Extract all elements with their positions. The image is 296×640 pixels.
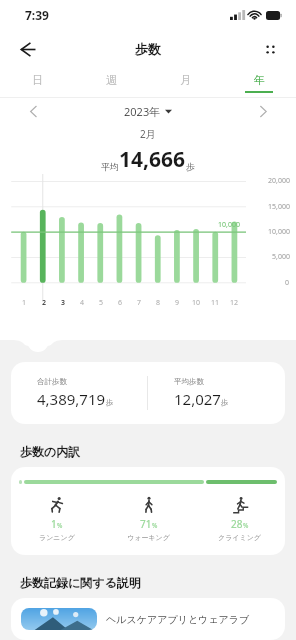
- button[interactable]: 1: [11, 496, 103, 542]
- staticText: 1: [22, 298, 27, 308]
- button[interactable]: 週: [74, 68, 148, 98]
- staticText: 5: [99, 298, 104, 308]
- staticText: 8: [156, 298, 161, 308]
- staticText: 歩: [186, 161, 195, 172]
- button[interactable]: ヘルスケアアプリとウェアラブ: [11, 598, 285, 640]
- button[interactable]: 2023年: [124, 104, 172, 119]
- staticText: 歩: [221, 398, 229, 407]
- staticText: 5,000: [272, 252, 290, 262]
- staticText: 年: [254, 73, 265, 87]
- staticText: 平均歩数: [174, 377, 204, 386]
- staticText: ウォーキング: [127, 533, 170, 542]
- staticText: 平均: [101, 161, 119, 172]
- staticText: %: [152, 521, 158, 530]
- button[interactable]: More options: [252, 31, 288, 67]
- staticText: 2023年: [124, 104, 161, 119]
- staticText: 3: [61, 298, 66, 308]
- staticText: 歩数: [135, 41, 161, 57]
- staticText: 15,000: [268, 202, 290, 212]
- button[interactable]: 1: [11, 467, 285, 555]
- button[interactable]: Back: [8, 30, 46, 68]
- staticText: 10,000: [218, 220, 240, 230]
- staticText: %: [243, 521, 249, 530]
- staticText: 月: [180, 73, 191, 87]
- staticText: 週: [106, 73, 117, 87]
- staticText: 2: [42, 298, 47, 308]
- button[interactable]: 合計歩数: [11, 362, 285, 424]
- button[interactable]: 日: [0, 68, 74, 98]
- staticText: 12: [230, 298, 239, 308]
- button[interactable]: 月: [148, 68, 222, 98]
- button[interactable]: Next year: [252, 100, 274, 122]
- staticText: 0: [285, 278, 290, 288]
- staticText: ヘルスケアアプリとウェアラブ: [106, 613, 275, 626]
- staticText: 4,389,719: [37, 389, 106, 409]
- staticText: 歩数の内訳: [20, 444, 81, 459]
- staticText: 12,027: [174, 389, 221, 409]
- button[interactable]: Previous year: [22, 100, 44, 122]
- staticText: 10: [192, 298, 201, 308]
- staticText: 14,666: [119, 145, 186, 174]
- staticText: クライミング: [218, 533, 261, 542]
- staticText: 10,000: [268, 227, 290, 237]
- staticText: 9: [175, 298, 180, 308]
- staticText: 日: [32, 73, 43, 87]
- button[interactable]: 71: [103, 496, 194, 542]
- staticText: 歩数記録に関する説明: [20, 575, 141, 590]
- staticText: 6: [118, 298, 123, 308]
- staticText: 20,000: [268, 176, 290, 186]
- staticText: 71: [140, 517, 152, 531]
- staticText: 7: [137, 298, 142, 308]
- button[interactable]: 年: [222, 68, 296, 98]
- staticText: 2月: [140, 127, 156, 141]
- button[interactable]: 28: [194, 496, 285, 542]
- staticText: 7:39: [25, 7, 49, 23]
- staticText: 28: [231, 517, 243, 531]
- staticText: 4: [80, 298, 85, 308]
- staticText: 合計歩数: [37, 377, 67, 386]
- staticText: %: [57, 521, 63, 530]
- staticText: 歩: [106, 398, 114, 407]
- staticText: 1: [51, 517, 57, 531]
- staticText: 11: [211, 298, 220, 308]
- staticText: ランニング: [39, 533, 75, 542]
